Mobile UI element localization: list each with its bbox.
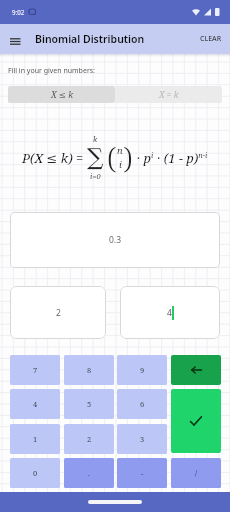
button[interactable] — [171, 389, 221, 453]
staticText: 2 — [56, 307, 61, 319]
button[interactable]: X ≤ k — [8, 86, 115, 103]
staticText: ∑ — [87, 144, 104, 171]
staticText: CLEAR — [200, 34, 222, 44]
staticText: 9:02 — [12, 8, 25, 16]
staticText: 0 — [33, 468, 38, 478]
staticText: 4 — [167, 307, 172, 319]
button[interactable]: 2 — [10, 286, 106, 339]
button[interactable]: 1 — [10, 424, 60, 454]
staticText: k — [93, 134, 98, 144]
staticText: / — [195, 468, 198, 478]
staticText: 5 — [87, 399, 92, 409]
button[interactable]: / — [171, 458, 221, 488]
button[interactable]: CLEAR — [196, 27, 226, 51]
staticText: Binomial Distribution — [35, 32, 145, 46]
staticText: Fill in your given numbers: — [8, 66, 95, 76]
staticText: ( — [107, 137, 117, 178]
staticText: P(X ≤ k) = — [22, 149, 87, 167]
staticText: 4 — [33, 399, 38, 409]
button[interactable]: 7 — [10, 355, 60, 385]
button[interactable] — [171, 355, 221, 385]
button[interactable]: 4 — [120, 286, 220, 339]
staticText: 2 — [87, 434, 92, 444]
button[interactable]: 0 — [10, 458, 60, 488]
button[interactable]: 4 — [10, 389, 60, 419]
staticText: i — [119, 158, 122, 171]
button[interactable]: 5 — [64, 389, 114, 419]
button[interactable]: X = k — [115, 86, 222, 103]
button[interactable]: 6 — [117, 389, 167, 419]
button[interactable]: 8 — [64, 355, 114, 385]
staticText: X = k — [159, 89, 179, 101]
staticText: n — [117, 144, 123, 157]
staticText: X ≤ k — [51, 89, 73, 101]
staticText: 1 — [33, 434, 38, 444]
button[interactable]: 0.3 — [10, 212, 220, 268]
staticText: 8 — [87, 365, 92, 375]
staticText: . — [88, 468, 90, 478]
staticText: 3 — [140, 434, 145, 444]
button[interactable]: 3 — [117, 424, 167, 454]
staticText: 9 — [140, 365, 145, 375]
staticText: - — [141, 468, 144, 478]
button[interactable]: 9 — [117, 355, 167, 385]
button[interactable] — [10, 38, 21, 45]
button[interactable]: 2 — [64, 424, 114, 454]
button[interactable]: - — [117, 458, 167, 488]
staticText: · pi · (1 − p)n−i — [133, 149, 208, 167]
staticText: 0.3 — [109, 234, 122, 246]
staticText: i=0 — [90, 171, 101, 181]
staticText: 6 — [140, 399, 145, 409]
staticText: 7 — [33, 365, 38, 375]
staticText: ) — [123, 137, 133, 178]
